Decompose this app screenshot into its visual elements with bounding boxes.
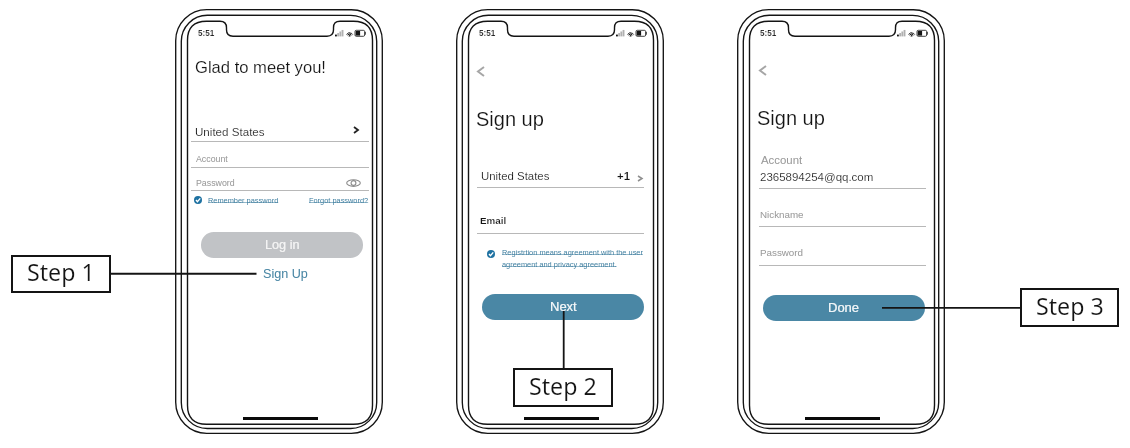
staticText: 5:51: [479, 29, 496, 38]
staticText: Account: [196, 154, 228, 164]
button[interactable]: Step 2: [513, 368, 613, 407]
staticText: Glad to meet you!: [195, 58, 326, 77]
button[interactable]: Next: [482, 294, 644, 320]
staticText: Sign up: [476, 108, 544, 130]
button[interactable]: Back: [753, 59, 775, 81]
button[interactable]: [478, 168, 645, 188]
staticText: Step 3: [1036, 290, 1104, 322]
staticText: Registrtion means agreement with the use…: [502, 248, 643, 256]
staticText: United States: [195, 125, 265, 138]
staticText: Password: [196, 178, 235, 188]
button[interactable]: [307, 193, 369, 205]
staticText: 2365894254@qq.com: [760, 171, 874, 184]
staticText: 5:51: [760, 29, 777, 38]
button[interactable]: Log in: [201, 232, 363, 258]
button[interactable]: [478, 214, 645, 234]
button[interactable]: [759, 152, 926, 186]
button[interactable]: Step 1: [11, 255, 111, 293]
staticText: Remember password: [208, 196, 279, 204]
staticText: Next: [550, 299, 577, 314]
staticText: Nickname: [760, 209, 804, 220]
button[interactable]: Step 3: [1020, 288, 1119, 327]
button[interactable]: [192, 193, 284, 205]
button[interactable]: [191, 171, 370, 191]
staticText: Sign up: [757, 107, 825, 129]
staticText: Sign Up: [263, 267, 308, 281]
staticText: 5:51: [198, 29, 215, 38]
staticText: United States: [481, 170, 550, 183]
staticText: +1: [617, 170, 630, 183]
staticText: Log in: [265, 238, 300, 252]
button[interactable]: [759, 206, 926, 225]
staticText: Email: [480, 215, 507, 226]
button[interactable]: [483, 247, 643, 271]
button[interactable]: [759, 245, 926, 264]
button[interactable]: Done: [763, 295, 925, 321]
button[interactable]: [258, 266, 306, 281]
staticText: agreement and privacy agreement.: [502, 260, 617, 268]
button[interactable]: [191, 120, 370, 142]
staticText: Step 1: [27, 256, 95, 288]
button[interactable]: Back: [471, 60, 493, 82]
staticText: Step 2: [529, 370, 597, 402]
staticText: Account: [761, 154, 803, 167]
staticText: Password: [760, 247, 804, 258]
staticText: Forgot password?: [309, 196, 369, 204]
staticText: Done: [828, 300, 860, 315]
button[interactable]: [191, 146, 370, 167]
